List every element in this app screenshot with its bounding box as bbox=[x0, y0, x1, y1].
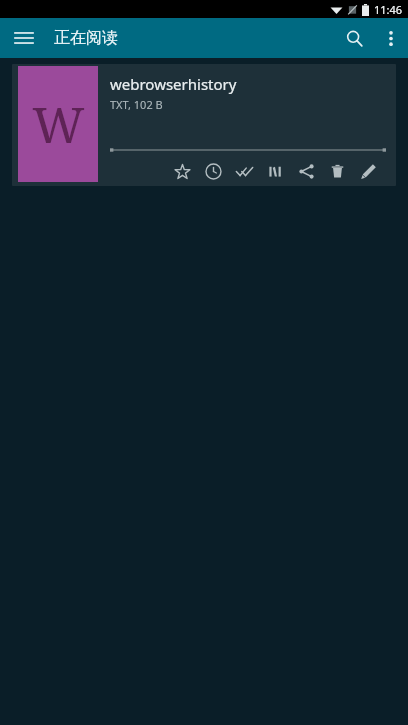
button[interactable]: Search bbox=[334, 18, 374, 58]
staticText: TXT, 102 B bbox=[110, 97, 163, 112]
button[interactable]: Favorite bbox=[167, 156, 198, 186]
button[interactable]: Book cover bbox=[18, 66, 98, 182]
button[interactable]: Recent bbox=[198, 156, 229, 186]
staticText: webrowserhistory bbox=[110, 74, 237, 94]
button[interactable]: Reading progress bbox=[110, 145, 386, 155]
button[interactable]: Library bbox=[260, 156, 291, 186]
button[interactable]: Edit bbox=[353, 156, 384, 186]
button[interactable]: Share bbox=[291, 156, 322, 186]
staticText: 正在阅读 bbox=[54, 28, 118, 48]
button[interactable]: Open navigation drawer bbox=[7, 21, 41, 55]
staticText: W bbox=[32, 90, 85, 158]
button[interactable]: Mark as read bbox=[229, 156, 260, 186]
staticText: 11:46 bbox=[374, 2, 403, 17]
button[interactable]: More options bbox=[374, 21, 408, 55]
button[interactable]: Delete bbox=[322, 156, 353, 186]
button[interactable]: Book cover bbox=[12, 64, 396, 186]
